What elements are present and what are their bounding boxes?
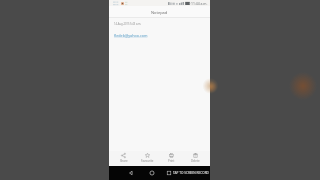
staticText: Share [120,159,128,163]
staticText: Notepad [151,10,168,15]
button[interactable]: Recents [166,170,172,176]
staticText: Delete [191,159,200,163]
button[interactable]: Print [159,151,183,166]
staticText: Print [168,159,175,163]
staticText: fledeb@yahoo.com [114,33,148,38]
button[interactable]: Share [112,151,135,166]
button[interactable]: Home [149,170,155,176]
staticText: 11:44 a.m. [191,1,208,6]
button[interactable]: Delete [183,151,207,166]
button[interactable]: Favourite [135,151,159,166]
staticText: Favourite [141,159,154,163]
button[interactable]: Back [128,170,134,176]
staticText: TAP TO SCREEN RECORD [173,171,209,175]
staticText: 14-Aug-2015 5:43 a.m. [114,22,142,26]
button[interactable]: TAP TO SCREEN RECORD [173,171,209,175]
